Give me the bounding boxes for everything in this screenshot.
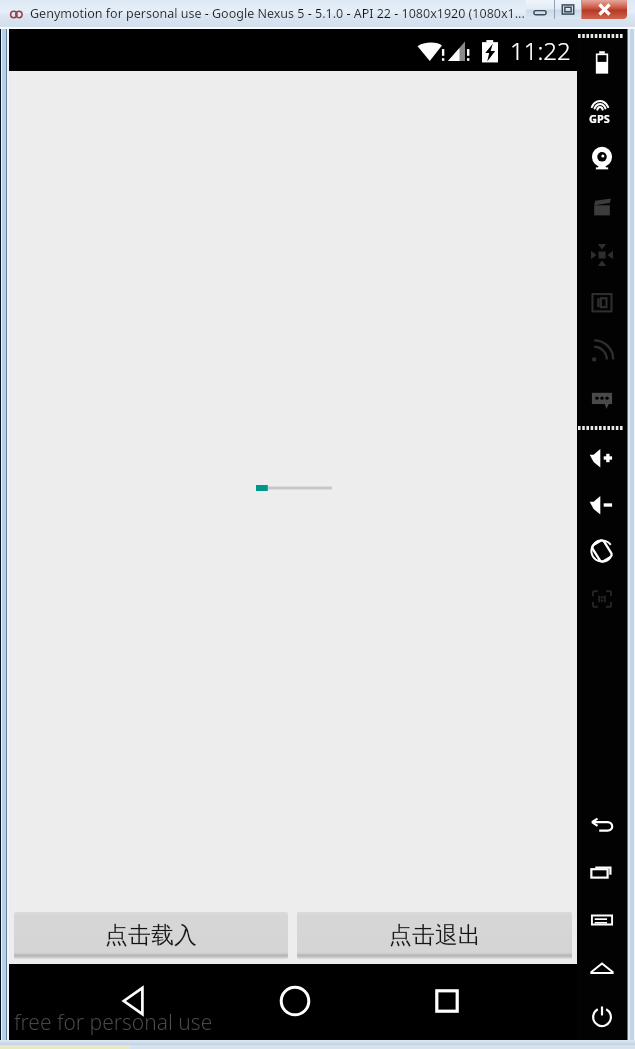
button[interactable]: GPS: [589, 100, 615, 124]
button[interactable]: Battery: [588, 49, 616, 77]
button[interactable]: Recent apps: [588, 858, 616, 886]
button[interactable]: Power: [588, 1002, 616, 1030]
button[interactable]: Maximize: [555, 0, 581, 19]
staticText: GPS: [589, 111, 610, 124]
button[interactable]: 点击载入: [14, 912, 288, 959]
button[interactable]: Recent apps: [372, 964, 522, 1040]
button[interactable]: Network: [588, 337, 616, 365]
button[interactable]: Back: [588, 811, 616, 839]
staticText: 点击退出: [389, 921, 481, 950]
staticText: 点击载入: [105, 921, 197, 950]
button[interactable]: Messages: [588, 385, 616, 413]
button[interactable]: 点击退出: [297, 912, 572, 959]
button[interactable]: Home: [588, 954, 616, 982]
button[interactable]: Menu: [588, 906, 616, 934]
button[interactable]: Volume up: [588, 444, 616, 472]
button[interactable]: Accelerometer: [588, 241, 616, 269]
button[interactable]: Scale 1:1: [588, 585, 616, 613]
staticText: free for personal use: [14, 1008, 213, 1037]
button[interactable]: Home: [215, 964, 375, 1040]
button[interactable]: Camera: [588, 145, 616, 173]
button[interactable]: Rotate screen: [588, 537, 616, 565]
button[interactable]: Close: [582, 0, 627, 19]
staticText: 11:22: [510, 34, 571, 67]
staticText: Genymotion for personal use - Google Nex…: [30, 5, 525, 22]
button[interactable]: Volume down: [588, 491, 616, 519]
button[interactable]: Identifiers: [588, 289, 616, 317]
button[interactable]: Minimize: [526, 0, 554, 19]
button[interactable]: Back: [29, 964, 239, 1040]
button[interactable]: Video: [588, 193, 616, 221]
